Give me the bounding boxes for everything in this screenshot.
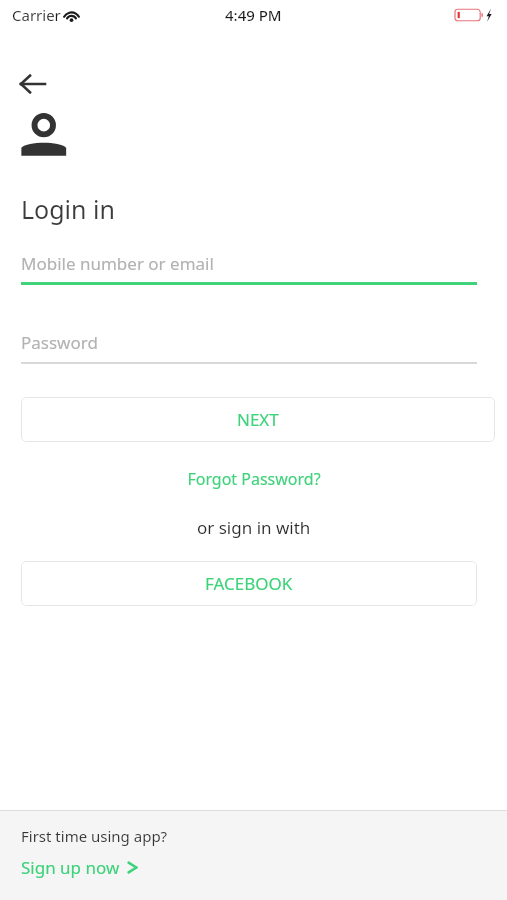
staticText: First time using app?: [21, 826, 168, 846]
staticText: Password: [21, 331, 98, 354]
button[interactable]: Sign up now: [21, 856, 138, 879]
button[interactable]: Forgot Password?: [177, 462, 331, 496]
button[interactable]: NEXT: [21, 397, 495, 442]
staticText: or sign in with: [197, 516, 311, 539]
button[interactable]: FACEBOOK: [21, 561, 477, 606]
staticText: 4:49 PM: [225, 5, 282, 25]
button[interactable]: Mobile number or email: [21, 252, 477, 285]
staticText: Sign up now: [21, 856, 120, 879]
staticText: NEXT: [237, 408, 279, 431]
staticText: FACEBOOK: [205, 572, 293, 595]
staticText: Mobile number or email: [21, 252, 214, 275]
staticText: Login in: [21, 192, 115, 226]
button[interactable]: Password: [21, 331, 477, 364]
button[interactable]: Back: [10, 62, 54, 106]
staticText: Forgot Password?: [187, 468, 321, 490]
staticText: Carrier: [12, 5, 61, 25]
